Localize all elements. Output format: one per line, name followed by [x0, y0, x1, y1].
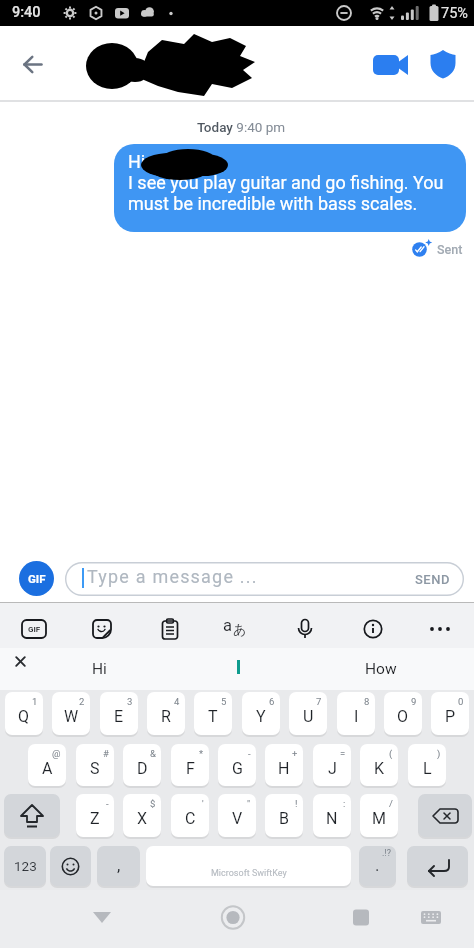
button[interactable]: GIF: [19, 561, 54, 596]
staticText: H: [278, 759, 290, 778]
button[interactable]: J: [313, 744, 351, 786]
staticText: C: [185, 809, 196, 828]
staticText: X: [137, 809, 148, 828]
button[interactable]: I: [337, 692, 375, 735]
staticText: Today: [197, 119, 233, 135]
button[interactable]: How: [316, 648, 446, 690]
staticText: ': [202, 798, 204, 809]
button[interactable]: R: [147, 692, 185, 735]
button[interactable]: Y: [242, 692, 280, 735]
staticText: *: [199, 748, 204, 759]
staticText: Y: [256, 707, 266, 726]
button[interactable]: [409, 896, 453, 940]
staticText: I see you play guitar and go fishing. Yo…: [128, 172, 444, 193]
button[interactable]: [296, 618, 314, 640]
button[interactable]: O: [384, 692, 422, 735]
staticText: 9: [411, 696, 417, 707]
button[interactable]: B: [265, 794, 303, 837]
button[interactable]: K: [360, 744, 398, 786]
button[interactable]: H: [265, 744, 303, 786]
button[interactable]: [80, 896, 124, 940]
staticText: GIF: [28, 625, 41, 634]
staticText: Q: [18, 707, 30, 726]
staticText: .: [375, 855, 380, 875]
button[interactable]: Q: [5, 692, 43, 735]
staticText: S: [90, 759, 100, 778]
button[interactable]: Hi: [40, 648, 158, 690]
staticText: How: [365, 660, 397, 678]
staticText: V: [232, 809, 243, 828]
staticText: B: [279, 809, 289, 828]
button[interactable]: [429, 50, 457, 79]
button[interactable]: [161, 618, 179, 640]
button[interactable]: GIF: [20, 618, 48, 640]
staticText: $: [150, 798, 156, 809]
button[interactable]: Z: [76, 794, 114, 837]
staticText: D: [137, 759, 148, 778]
button[interactable]: [407, 846, 468, 886]
staticText: 3: [127, 696, 133, 707]
button[interactable]: L: [408, 744, 446, 786]
button[interactable]: S: [76, 744, 114, 786]
button[interactable]: M: [360, 794, 398, 837]
button[interactable]: Microsoft SwiftKey: [146, 846, 351, 886]
staticText: ,: [117, 855, 121, 875]
button[interactable]: .: [359, 846, 396, 886]
button[interactable]: [4, 794, 60, 837]
button[interactable]: [363, 618, 383, 640]
button[interactable]: [65, 562, 464, 596]
button[interactable]: E: [100, 692, 138, 735]
button[interactable]: ,: [97, 846, 140, 886]
button[interactable]: [418, 794, 472, 837]
button[interactable]: D: [123, 744, 161, 786]
staticText: R: [161, 707, 171, 726]
button[interactable]: [211, 896, 255, 940]
button[interactable]: N: [313, 794, 351, 837]
staticText: Hi: [128, 151, 146, 172]
staticText: A: [42, 759, 53, 778]
staticText: E: [114, 707, 124, 726]
staticText: L: [423, 759, 432, 778]
button[interactable]: G: [218, 744, 256, 786]
staticText: (: [389, 748, 393, 759]
staticText: T: [208, 707, 218, 726]
button[interactable]: X: [123, 794, 161, 837]
button[interactable]: P: [431, 692, 469, 735]
staticText: ": [247, 798, 251, 809]
button[interactable]: C: [171, 794, 209, 837]
staticText: SEND: [415, 572, 450, 587]
staticText: 9:40 pm: [233, 119, 286, 135]
staticText: #: [103, 748, 109, 759]
button[interactable]: SEND: [405, 564, 460, 594]
staticText: 75%: [441, 5, 468, 22]
staticText: ): [437, 748, 441, 759]
button[interactable]: [91, 618, 113, 640]
button[interactable]: [428, 621, 452, 637]
staticText: M: [372, 809, 386, 828]
staticText: 5: [221, 696, 227, 707]
staticText: 1: [32, 696, 38, 707]
button[interactable]: U: [289, 692, 327, 735]
button[interactable]: [373, 52, 409, 78]
button[interactable]: [15, 656, 26, 667]
staticText: N: [326, 809, 338, 828]
button[interactable]: A: [28, 744, 66, 786]
button[interactable]: [22, 54, 43, 75]
staticText: Sent: [437, 242, 463, 257]
staticText: O: [397, 707, 409, 726]
button[interactable]: [339, 896, 383, 940]
button[interactable]: T: [194, 692, 232, 735]
button[interactable]: Hi: [114, 144, 466, 232]
button[interactable]: F: [171, 744, 209, 786]
button[interactable]: V: [218, 794, 256, 837]
staticText: &: [150, 748, 156, 759]
staticText: 8: [364, 696, 370, 707]
button[interactable]: [50, 846, 91, 886]
staticText: GIF: [28, 572, 46, 585]
staticText: Hi: [92, 660, 107, 678]
button[interactable]: W: [52, 692, 90, 735]
staticText: J: [328, 759, 337, 778]
staticText: 9:40: [12, 4, 41, 21]
staticText: U: [303, 707, 314, 726]
button[interactable]: 123: [4, 846, 46, 886]
